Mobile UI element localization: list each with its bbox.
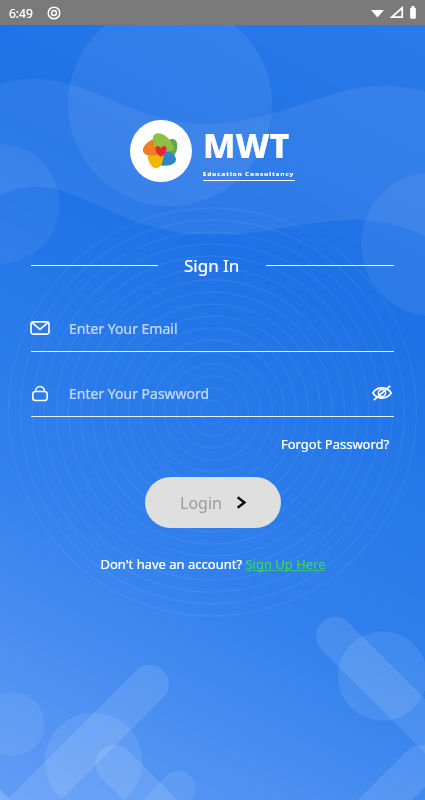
staticText: Sign In [184,254,240,277]
button[interactable]: Email [31,311,394,352]
staticText: Education Consultancy [203,170,295,178]
staticText: 6:49 [9,5,33,21]
button[interactable]: Don't have an account? Sign Up Here [94,552,332,576]
button[interactable]: Login [145,477,281,528]
staticText: Enter Your Email [69,319,394,338]
button[interactable]: Show password [370,381,394,405]
staticText: Don't have an account? Sign Up Here [100,555,326,573]
staticText: Login [180,492,222,514]
staticText: Enter Your Paswword [69,384,370,403]
button[interactable]: Password [31,376,394,417]
button[interactable]: Forgot Password? [277,431,394,457]
staticText: Forgot Password? [281,435,390,453]
staticText: MWT [203,122,290,168]
